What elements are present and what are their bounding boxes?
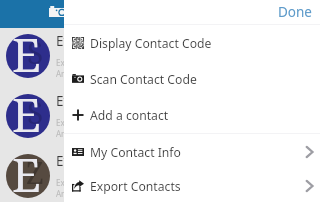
staticText: Scan Contact Code [90, 71, 197, 88]
button[interactable]: Export Contacts [64, 170, 320, 202]
button[interactable]: Add a contact [64, 97, 320, 133]
staticText: E [12, 34, 41, 78]
staticText: Add a contact [90, 107, 169, 124]
button[interactable]: Take photo [49, 6, 67, 17]
button[interactable]: S [0, 28, 320, 88]
staticText: Another [56, 128, 87, 139]
staticText: Ethan [56, 32, 93, 50]
staticText: Example [56, 57, 89, 68]
button[interactable]: Display Contact Code [64, 25, 320, 61]
staticText: Another [56, 68, 87, 79]
staticText: S [27, 94, 44, 133]
staticText: Another [56, 188, 87, 199]
button[interactable]: Scan Contact Code [64, 61, 320, 97]
staticText: Export Contacts [90, 178, 181, 195]
staticText: Ethan [56, 92, 93, 110]
button[interactable]: S [0, 88, 320, 148]
staticText: Done [278, 3, 312, 21]
staticText: Ethan [56, 152, 93, 170]
staticText: Display Contact Code [90, 35, 212, 52]
button[interactable]: Done [270, 0, 320, 24]
button[interactable]: My Contact Info [64, 134, 320, 170]
staticText: Z [26, 154, 44, 193]
staticText: Example [56, 117, 89, 128]
staticText: E [12, 154, 41, 198]
staticText: E [12, 94, 41, 138]
staticText: Example [56, 177, 89, 188]
button[interactable]: Z [0, 148, 320, 202]
staticText: S [27, 34, 44, 73]
staticText: My Contact Info [90, 144, 181, 161]
